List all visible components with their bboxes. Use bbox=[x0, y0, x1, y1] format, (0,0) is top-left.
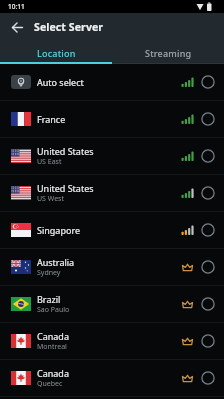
staticText: Canada bbox=[37, 367, 69, 379]
button[interactable]: Location bbox=[0, 41, 112, 64]
button[interactable]: France bbox=[0, 101, 224, 138]
staticText: Brazil bbox=[37, 293, 61, 305]
button[interactable]: Australia bbox=[0, 249, 224, 286]
staticText: US West bbox=[37, 194, 64, 204]
button[interactable]: Singapore bbox=[0, 212, 224, 249]
staticText: France bbox=[37, 113, 66, 125]
staticText: 10:11 bbox=[8, 2, 25, 11]
button[interactable] bbox=[0, 13, 34, 41]
staticText: United States bbox=[37, 182, 94, 194]
button[interactable]: Brazil bbox=[0, 286, 224, 323]
button[interactable]: United States bbox=[0, 175, 224, 212]
staticText: Sao Paulo bbox=[37, 305, 70, 315]
staticText: United States bbox=[37, 145, 94, 157]
staticText: Montreal bbox=[37, 342, 67, 352]
staticText: Quebec bbox=[37, 379, 63, 389]
staticText: Location bbox=[37, 47, 76, 59]
staticText: Sydney bbox=[37, 268, 61, 278]
staticText: Select Server bbox=[34, 20, 104, 34]
button[interactable]: Canada bbox=[0, 360, 224, 397]
button[interactable]: Canada bbox=[0, 323, 224, 360]
staticText: US East bbox=[37, 157, 62, 167]
staticText: Australia bbox=[37, 256, 75, 268]
staticText: Singapore bbox=[37, 224, 81, 236]
button[interactable]: Auto select bbox=[0, 64, 224, 101]
staticText: Auto select bbox=[37, 76, 84, 88]
staticText: Canada bbox=[37, 330, 69, 342]
staticText: Streaming bbox=[145, 47, 192, 59]
button[interactable]: Streaming bbox=[112, 41, 224, 64]
button[interactable]: United States bbox=[0, 138, 224, 175]
